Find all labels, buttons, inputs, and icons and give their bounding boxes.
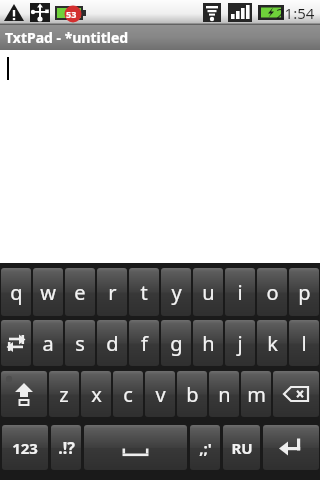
- button[interactable]: r: [97, 268, 127, 316]
- staticText: i: [237, 279, 243, 306]
- staticText: s: [75, 330, 85, 357]
- staticText: .!?: [58, 437, 75, 459]
- button[interactable]: ,;': [190, 425, 220, 470]
- button[interactable]: o: [257, 268, 287, 316]
- staticText: c: [123, 381, 133, 408]
- button[interactable]: [0, 50, 320, 263]
- button[interactable]: .!?: [51, 425, 81, 470]
- staticText: j: [237, 330, 243, 357]
- button[interactable]: z: [49, 371, 79, 417]
- staticText: q: [10, 279, 23, 306]
- button[interactable]: g: [161, 320, 191, 366]
- button[interactable]: u: [193, 268, 223, 316]
- button[interactable]: n: [209, 371, 239, 417]
- staticText: t: [140, 279, 148, 306]
- staticText: v: [155, 381, 166, 408]
- button[interactable]: Delete: [273, 371, 319, 417]
- staticText: 53: [66, 8, 77, 20]
- button[interactable]: p: [289, 268, 319, 316]
- button[interactable]: b: [177, 371, 207, 417]
- staticText: b: [186, 381, 199, 408]
- button[interactable]: TxtPad - *untitled: [0, 25, 320, 50]
- button[interactable]: e: [65, 268, 95, 316]
- button[interactable]: t: [129, 268, 159, 316]
- button[interactable]: s: [65, 320, 95, 366]
- staticText: g: [170, 330, 183, 357]
- staticText: p: [298, 279, 311, 306]
- staticText: u: [202, 279, 215, 306]
- staticText: r: [108, 279, 117, 306]
- button[interactable]: h: [193, 320, 223, 366]
- button[interactable]: x: [81, 371, 111, 417]
- button[interactable]: m: [241, 371, 271, 417]
- staticText: k: [267, 330, 278, 357]
- button[interactable]: l: [289, 320, 319, 366]
- staticText: z: [59, 381, 69, 408]
- button[interactable]: y: [161, 268, 191, 316]
- staticText: ,;': [199, 438, 212, 458]
- staticText: RU: [231, 438, 253, 458]
- staticText: a: [42, 330, 54, 357]
- staticText: 21:54: [276, 3, 315, 23]
- button[interactable]: 123: [2, 425, 48, 470]
- button[interactable]: f: [129, 320, 159, 366]
- button[interactable]: a: [33, 320, 63, 366]
- button[interactable]: Switch language: [1, 320, 31, 366]
- staticText: l: [301, 330, 307, 357]
- button[interactable]: Space: [84, 425, 187, 470]
- staticText: h: [202, 330, 215, 357]
- button[interactable]: v: [145, 371, 175, 417]
- staticText: m: [247, 381, 266, 408]
- button[interactable]: Enter: [263, 425, 319, 470]
- button[interactable]: k: [257, 320, 287, 366]
- button[interactable]: d: [97, 320, 127, 366]
- staticText: n: [218, 381, 231, 408]
- staticText: TxtPad - *untitled: [5, 28, 129, 47]
- staticText: 123: [12, 438, 38, 458]
- button[interactable]: q: [1, 268, 31, 316]
- button[interactable]: Shift: [1, 371, 47, 417]
- button[interactable]: RU: [223, 425, 260, 470]
- staticText: w: [40, 279, 56, 306]
- staticText: e: [74, 279, 86, 306]
- staticText: o: [266, 279, 279, 306]
- button[interactable]: i: [225, 268, 255, 316]
- button[interactable]: j: [225, 320, 255, 366]
- staticText: d: [106, 330, 119, 357]
- staticText: x: [91, 381, 102, 408]
- button[interactable]: c: [113, 371, 143, 417]
- staticText: f: [141, 330, 148, 357]
- staticText: y: [171, 279, 182, 306]
- button[interactable]: w: [33, 268, 63, 316]
